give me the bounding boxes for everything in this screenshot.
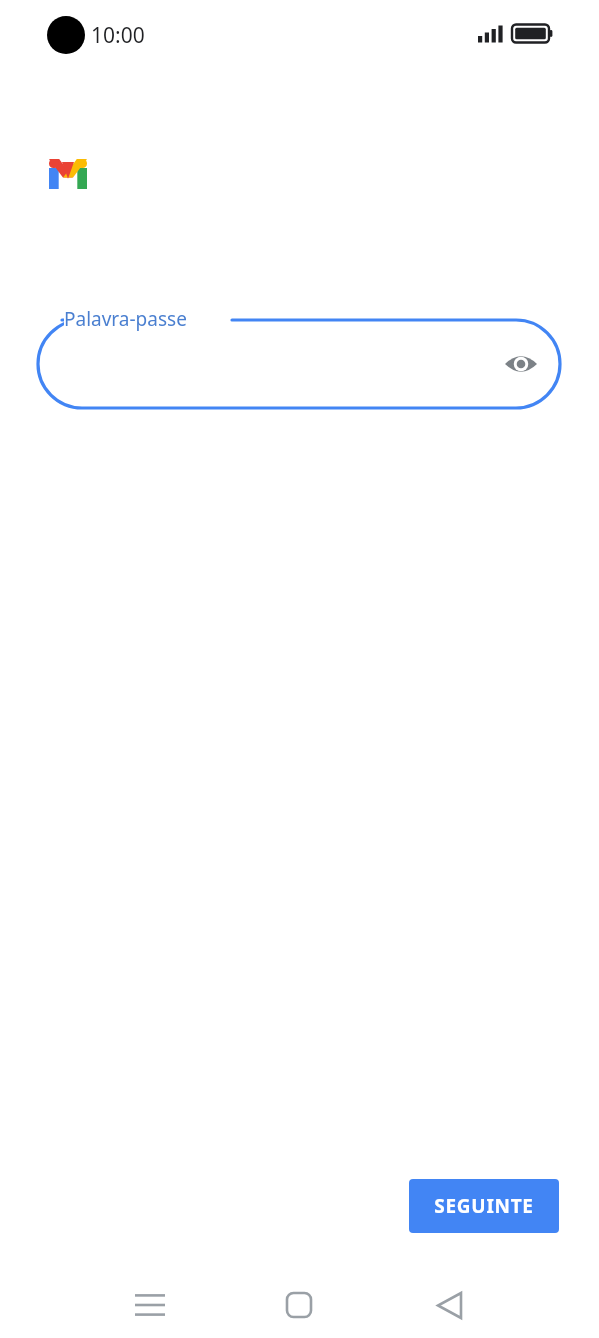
button[interactable]: Início <box>269 1275 329 1335</box>
staticText: 10:00 <box>91 21 145 50</box>
staticText: Palavra-passe <box>64 306 187 332</box>
staticText: SEGUINTE <box>434 1193 534 1219</box>
button[interactable]: Recentes <box>120 1275 180 1335</box>
button[interactable]: Voltar <box>419 1275 479 1335</box>
button[interactable]: Mostrar palavra-passe <box>501 344 541 384</box>
button[interactable]: Palavra-passe <box>36 316 562 410</box>
button[interactable]: SEGUINTE <box>409 1179 559 1233</box>
